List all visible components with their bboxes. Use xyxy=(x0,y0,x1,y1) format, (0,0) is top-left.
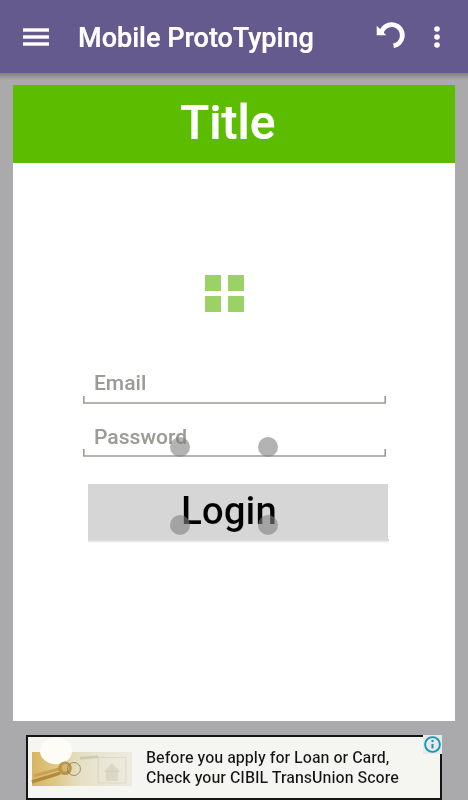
button[interactable]: Ad information xyxy=(423,735,442,754)
button[interactable]: Email xyxy=(83,371,386,406)
staticText: Title xyxy=(180,94,276,150)
button[interactable]: Login xyxy=(88,484,388,540)
button[interactable]: Before you apply for Loan or Card, xyxy=(28,737,440,798)
staticText: Mobile ProtoTyping xyxy=(78,22,314,54)
button[interactable]: Password xyxy=(83,425,386,459)
button[interactable]: More options xyxy=(414,14,460,60)
staticText: Before you apply for Loan or Card, xyxy=(146,748,390,767)
staticText: Login xyxy=(181,488,277,533)
staticText: Password xyxy=(94,425,188,450)
staticText: Email xyxy=(94,371,147,396)
button[interactable]: Menu xyxy=(13,14,59,60)
staticText: Check your CIBIL TransUnion Score xyxy=(146,768,399,787)
button[interactable]: Undo xyxy=(364,10,410,56)
